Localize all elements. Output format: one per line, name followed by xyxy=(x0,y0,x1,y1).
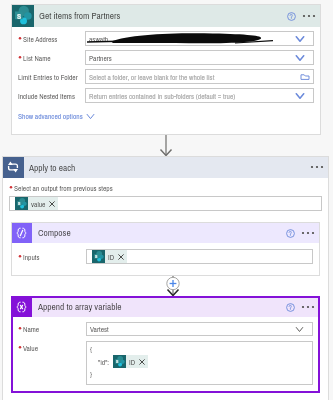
staticText: Show advanced options xyxy=(18,111,83,121)
staticText: Get items from Partners xyxy=(39,9,121,22)
button[interactable]: Help xyxy=(282,225,298,241)
staticText: Append to array variable xyxy=(38,300,122,313)
button[interactable]: { xyxy=(86,341,313,385)
button[interactable]: More commands xyxy=(309,159,325,175)
staticText: Inputs xyxy=(23,252,40,262)
button[interactable]: Partners xyxy=(85,50,314,65)
staticText: ID xyxy=(129,357,136,367)
staticText: List Name xyxy=(23,53,51,63)
button[interactable]: Help xyxy=(283,8,299,24)
button[interactable]: Append to array variable xyxy=(11,296,320,317)
staticText: } xyxy=(90,369,93,379)
staticText: S xyxy=(116,359,119,365)
staticText: Value xyxy=(23,343,39,353)
staticText: Compose xyxy=(38,226,71,239)
button[interactable]: More commands xyxy=(300,299,316,315)
staticText: Name xyxy=(23,324,40,334)
staticText: S xyxy=(18,201,21,207)
button[interactable]: aswath xyxy=(85,31,314,46)
button[interactable]: More commands xyxy=(301,8,317,24)
button[interactable]: More commands xyxy=(300,225,316,241)
staticText: Site Address xyxy=(23,34,58,44)
button[interactable]: Apply to each xyxy=(2,156,329,178)
button[interactable]: Vartest xyxy=(86,322,313,336)
button[interactable]: S xyxy=(86,249,313,264)
staticText: Partners xyxy=(89,53,112,63)
button[interactable]: Return entries contained in sub-folders … xyxy=(85,88,314,103)
staticText: Limit Entries to Folder xyxy=(18,72,78,82)
staticText: S xyxy=(95,254,98,260)
button[interactable]: S xyxy=(11,4,321,27)
staticText: value xyxy=(31,199,46,209)
staticText: S xyxy=(17,11,22,21)
staticText: "id": xyxy=(98,357,110,367)
staticText: Select a folder, or leave blank for the … xyxy=(89,72,215,82)
staticText: aswath xyxy=(89,34,109,44)
staticText: Apply to each xyxy=(29,161,76,174)
button[interactable]: Compose xyxy=(11,222,320,243)
staticText: Return entries contained in sub-folders … xyxy=(89,91,236,101)
button[interactable]: S xyxy=(9,196,322,211)
button[interactable]: Help xyxy=(282,299,298,315)
staticText: { xyxy=(90,344,93,354)
staticText: ID xyxy=(108,252,115,262)
staticText: Include Nested Items xyxy=(18,91,75,101)
staticText: Vartest xyxy=(90,324,109,334)
staticText: Select an output from previous steps xyxy=(14,183,113,193)
button[interactable]: Select a folder, or leave blank for the … xyxy=(85,69,314,84)
button[interactable]: Show advanced options xyxy=(18,110,95,122)
